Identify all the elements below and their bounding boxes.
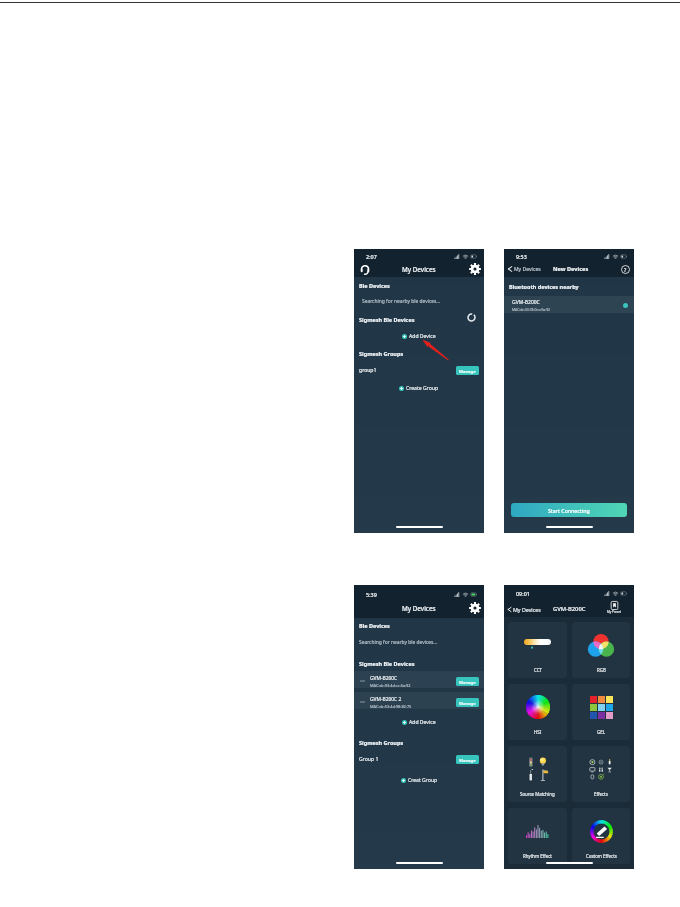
- staticText: Effects: [594, 791, 608, 797]
- button[interactable]: Start Connecting: [511, 503, 627, 517]
- staticText: 2:07: [366, 253, 377, 260]
- staticText: HSI: [534, 729, 542, 735]
- staticText: Custom Effects: [586, 853, 617, 859]
- staticText: MAC:dc:53:4d:98:82:75: [370, 704, 412, 709]
- staticText: Add Device: [409, 333, 436, 340]
- staticText: CCT: [534, 667, 542, 673]
- staticText: Sigmesh Groups: [359, 350, 404, 357]
- staticText: Ble Devices: [359, 282, 390, 289]
- staticText: Group 1: [359, 756, 379, 763]
- staticText: Sigmesh Groups: [359, 739, 404, 746]
- staticText: GVM-B200C 2: [370, 696, 402, 703]
- staticText: New Devices: [553, 265, 589, 273]
- staticText: 09:01: [516, 590, 530, 597]
- staticText: Start Connecting: [548, 507, 590, 514]
- button[interactable]: Add Device: [354, 717, 484, 727]
- button[interactable]: Creat Group: [354, 775, 484, 785]
- button[interactable]: Manage: [456, 698, 479, 707]
- button[interactable]: Manage: [456, 677, 479, 686]
- button[interactable]: GVM-B200C 2: [360, 694, 479, 710]
- button[interactable]: My Devices: [506, 263, 541, 275]
- button[interactable]: CCT: [508, 622, 567, 678]
- button[interactable]: GVM-B200C: [512, 297, 628, 314]
- staticText: Manage: [459, 757, 476, 763]
- staticText: 5:39: [366, 591, 377, 598]
- button[interactable]: My Preset: [607, 601, 621, 614]
- button[interactable]: Add Device: [354, 331, 484, 341]
- button[interactable]: GVM-B200C: [360, 673, 479, 689]
- staticText: Creat Group: [408, 777, 438, 784]
- button[interactable]: RGB: [572, 622, 630, 678]
- button[interactable]: Custom Effects: [572, 808, 630, 864]
- button[interactable]: Manage: [456, 366, 479, 375]
- staticText: Searching for nearby ble devices...: [362, 298, 441, 305]
- button[interactable]: Create Group: [354, 383, 484, 393]
- staticText: Searching for nearby ble devices...: [359, 639, 438, 646]
- staticText: GEL: [597, 729, 605, 735]
- staticText: GVM-B200C: [370, 675, 398, 682]
- button[interactable]: Rhythm Effect: [508, 808, 567, 864]
- staticText: Ble Devices: [359, 622, 390, 629]
- button[interactable]: Settings: [469, 602, 481, 614]
- staticText: Sigmesh Ble Devices: [359, 316, 415, 323]
- button[interactable]: Support: [358, 263, 371, 276]
- staticText: Bluetooth devices nearby: [509, 283, 579, 290]
- staticText: Manage: [459, 679, 476, 685]
- button[interactable]: Source Matching: [508, 746, 567, 802]
- staticText: Source Matching: [520, 791, 555, 797]
- staticText: My Devices: [514, 266, 541, 273]
- button[interactable]: group1: [359, 364, 479, 376]
- staticText: GVM-B200C: [512, 299, 540, 306]
- staticText: Create Group: [406, 385, 439, 392]
- button[interactable]: HSI: [508, 684, 567, 740]
- button[interactable]: GEL: [572, 684, 630, 740]
- button[interactable]: My Devices: [506, 603, 541, 615]
- staticText: MAC:dc:33:74:0:cc:5a:92: [512, 307, 551, 312]
- button[interactable]: Settings: [469, 263, 481, 275]
- staticText: Manage: [459, 700, 476, 706]
- staticText: My Preset: [607, 610, 621, 614]
- staticText: MAC:dc:93:4d:cc:5a:92: [370, 683, 411, 688]
- staticText: 9:53: [516, 253, 527, 260]
- staticText: GVM-B200C: [553, 605, 586, 613]
- staticText: Sigmesh Ble Devices: [359, 660, 415, 667]
- staticText: My Devices: [513, 606, 541, 613]
- button[interactable]: Manage: [456, 755, 479, 764]
- staticText: Rhythm Effect: [523, 853, 552, 859]
- staticText: RGB: [597, 667, 606, 673]
- button[interactable]: Help: [619, 263, 631, 275]
- staticText: My Devices: [402, 604, 436, 613]
- staticText: Manage: [459, 368, 476, 374]
- staticText: group1: [359, 367, 377, 374]
- staticText: Add Device: [409, 719, 436, 726]
- staticText: My Devices: [402, 265, 436, 274]
- button[interactable]: Effects: [572, 746, 630, 802]
- staticText: ?: [624, 266, 627, 273]
- button[interactable]: Group 1: [359, 753, 479, 765]
